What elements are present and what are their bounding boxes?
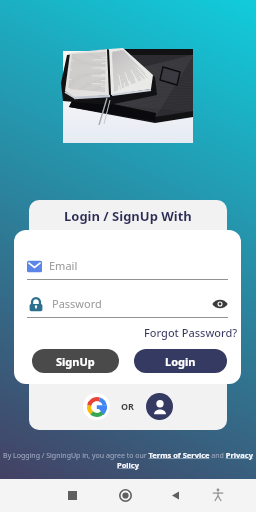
button[interactable]: Recents — [60, 483, 84, 507]
staticText: Login — [165, 354, 196, 369]
staticText: Email — [49, 258, 78, 273]
button[interactable]: Login — [134, 349, 227, 373]
button[interactable]: Login / SignUp With — [29, 200, 227, 232]
button[interactable]: SignUp — [32, 349, 119, 373]
button[interactable]: Accessibility — [206, 483, 230, 507]
button[interactable]: Home — [113, 483, 137, 507]
staticText: Password — [52, 296, 102, 311]
button[interactable]: Continue as guest — [146, 393, 173, 420]
staticText: OR — [121, 400, 135, 412]
staticText: By Logging / SigningUp in, you agree to … — [3, 450, 253, 470]
staticText: SignUp — [56, 354, 95, 369]
button[interactable]: Back — [163, 483, 187, 507]
button[interactable]: Forgot Password? — [144, 325, 238, 340]
button[interactable]: Sign in with Google — [83, 393, 110, 420]
staticText: Login / SignUp With — [64, 207, 192, 225]
